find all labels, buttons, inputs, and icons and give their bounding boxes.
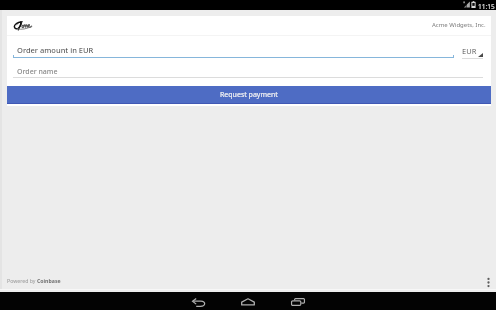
- staticText: EUR: [462, 46, 477, 56]
- staticText: Order amount in EUR: [17, 45, 94, 55]
- staticText: Request payment: [220, 90, 278, 100]
- button[interactable]: Request payment: [7, 86, 491, 104]
- button[interactable]: More options: [481, 272, 495, 292]
- staticText: Coinbase: [37, 277, 61, 284]
- staticText: Order name: [17, 67, 58, 77]
- staticText: 11:15: [478, 2, 495, 11]
- staticText: Powered by: [7, 277, 37, 284]
- button[interactable]: Recent apps: [284, 292, 312, 310]
- button[interactable]: Home: [234, 292, 262, 310]
- button[interactable]: Back: [185, 292, 213, 310]
- staticText: Acme Widgets, Inc.: [432, 21, 486, 29]
